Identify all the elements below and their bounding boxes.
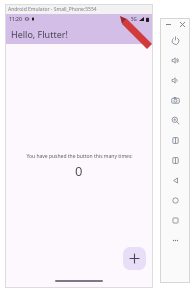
staticText: Android Emulator - Small_Phone:5554 bbox=[8, 6, 97, 13]
button[interactable]: Overview bbox=[160, 210, 190, 230]
staticText: You have pushed the button this many tim… bbox=[26, 153, 133, 160]
button[interactable]: Zoom bbox=[160, 110, 190, 130]
button[interactable]: Volume up bbox=[160, 50, 190, 70]
button[interactable]: Increment bbox=[123, 247, 146, 270]
button[interactable]: Home bbox=[160, 190, 190, 210]
button[interactable]: Rotate right bbox=[160, 150, 190, 170]
button[interactable]: Power bbox=[160, 30, 190, 50]
staticText: 5G bbox=[131, 16, 137, 22]
button[interactable]: Minimize bbox=[164, 20, 172, 28]
button[interactable]: Take screenshot bbox=[160, 90, 190, 110]
staticText: Hello, Flutter! bbox=[11, 28, 68, 40]
button[interactable]: Back bbox=[160, 170, 190, 190]
staticText: 0 bbox=[75, 162, 83, 180]
button[interactable]: Rotate left bbox=[160, 130, 190, 150]
button[interactable]: More bbox=[160, 230, 190, 250]
staticText: 11:20 bbox=[9, 16, 22, 23]
button[interactable]: Close bbox=[178, 20, 186, 28]
button[interactable]: Volume down bbox=[160, 70, 190, 90]
